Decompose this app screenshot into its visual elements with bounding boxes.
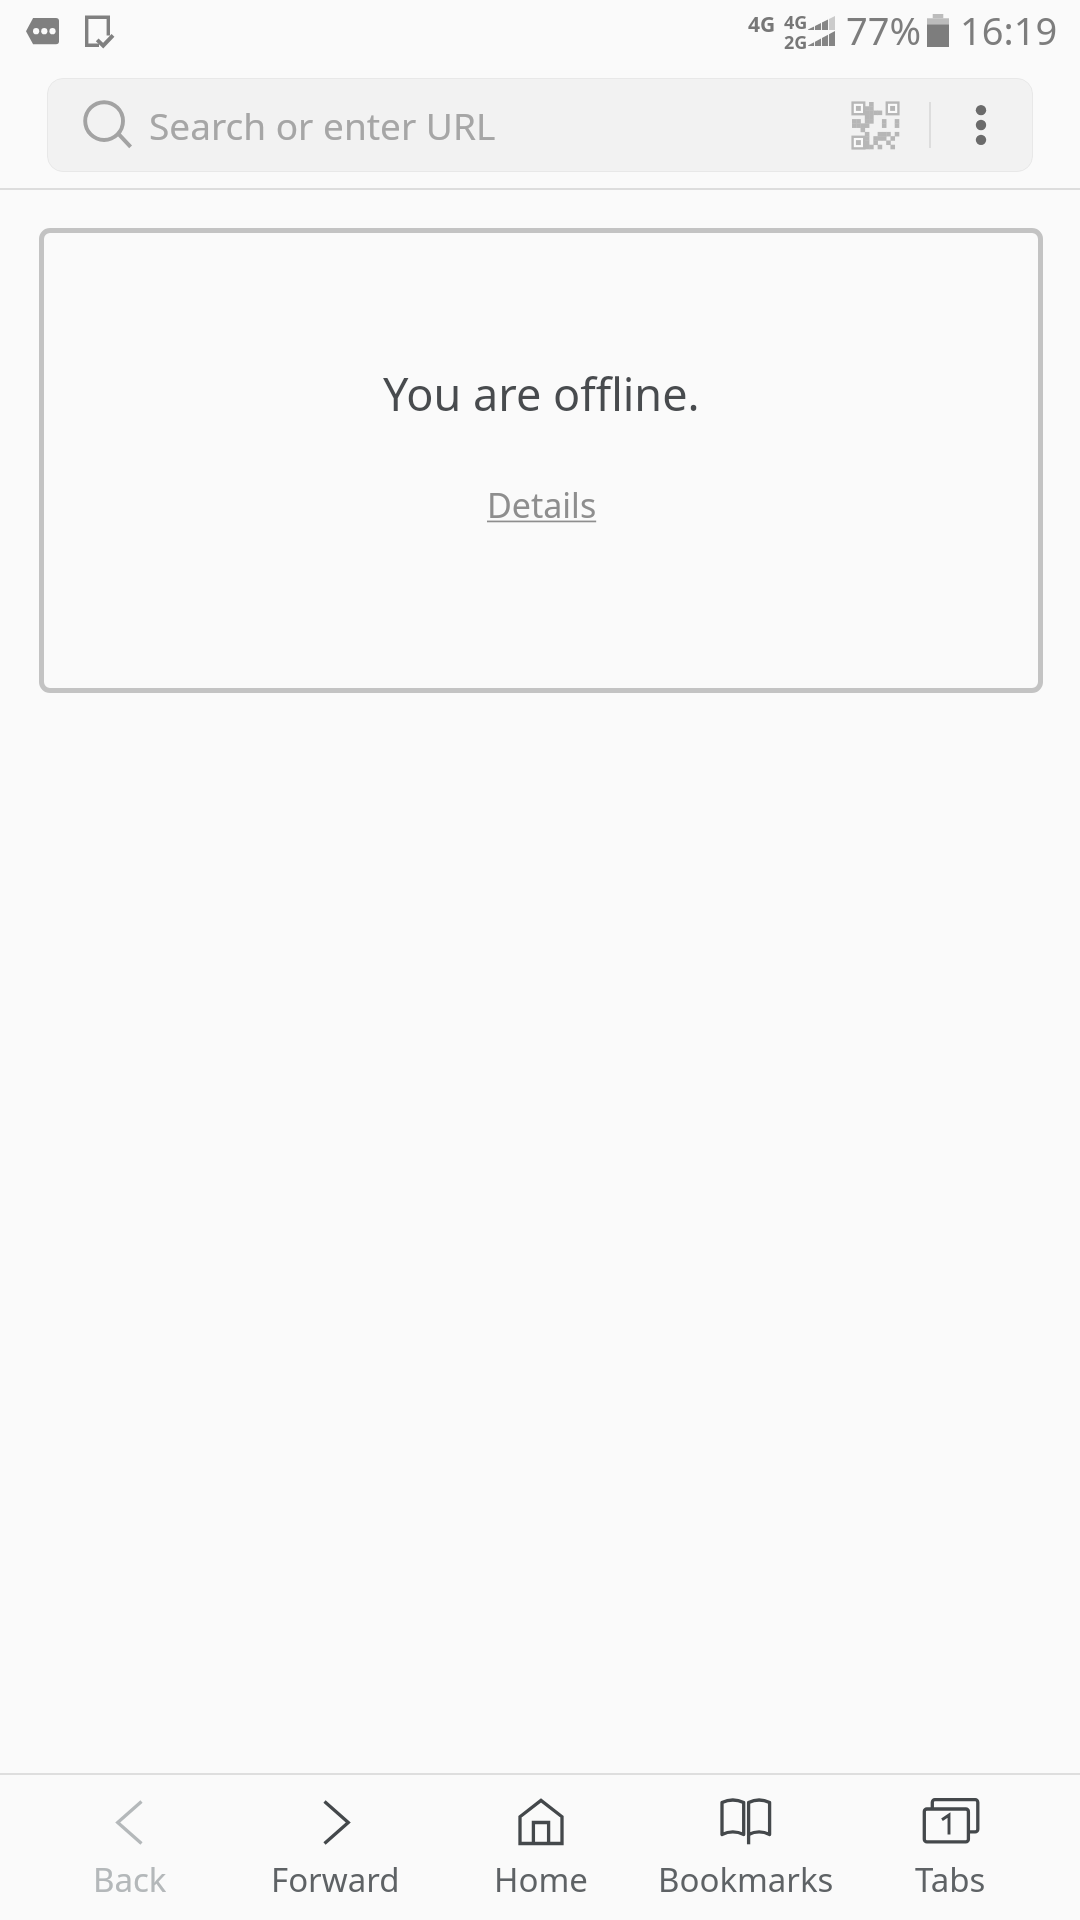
button[interactable]: Back bbox=[27, 1775, 233, 1920]
staticText: Home bbox=[494, 1857, 588, 1902]
button[interactable]: Home bbox=[438, 1775, 643, 1920]
staticText: 2G bbox=[784, 30, 808, 55]
button[interactable]: More options bbox=[953, 97, 1009, 153]
button[interactable]: Forward bbox=[233, 1775, 438, 1920]
staticText: Tabs bbox=[915, 1857, 986, 1902]
button[interactable]: Tabs bbox=[848, 1775, 1053, 1920]
staticText: 4G bbox=[748, 10, 776, 39]
button[interactable]: Scan QR code bbox=[845, 95, 905, 155]
staticText: 77% bbox=[846, 4, 922, 56]
button[interactable]: Details bbox=[481, 482, 603, 528]
button[interactable]: Search or enter URL bbox=[47, 78, 1033, 172]
other: Notifications bbox=[26, 8, 70, 52]
staticText: 16:19 bbox=[960, 4, 1058, 56]
staticText: 4G bbox=[784, 10, 808, 35]
other: Software update ready bbox=[78, 8, 122, 52]
staticText: Forward bbox=[271, 1857, 400, 1902]
staticText: Back bbox=[93, 1857, 167, 1902]
staticText: Details bbox=[487, 482, 597, 528]
staticText: Bookmarks bbox=[658, 1857, 834, 1902]
staticText: You are offline. bbox=[383, 363, 700, 424]
button[interactable]: Bookmarks bbox=[643, 1775, 848, 1920]
staticText: Search or enter URL bbox=[149, 100, 496, 150]
